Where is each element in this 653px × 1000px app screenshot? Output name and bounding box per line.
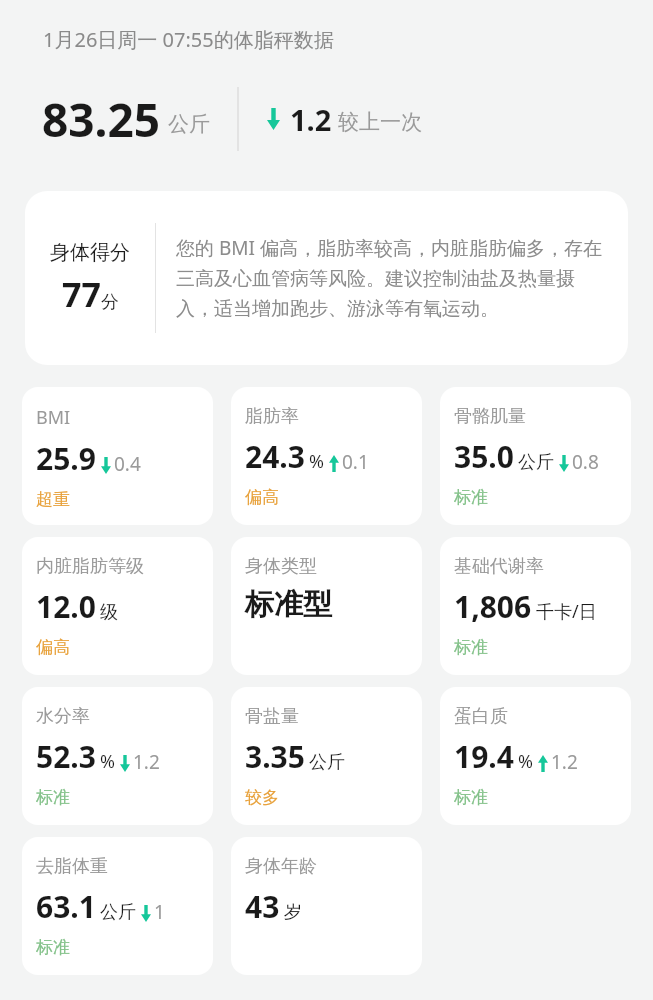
staticText: 公斤 [518, 451, 554, 474]
staticText: 偏高 [36, 637, 70, 658]
staticText: 3.35 [245, 736, 305, 777]
staticText: 77 [62, 271, 101, 317]
staticText: 63.1 [36, 886, 96, 927]
button[interactable]: 身体类型 [231, 537, 422, 675]
staticText: 级 [100, 601, 118, 624]
staticText: 公斤 [168, 111, 210, 137]
staticText: 身体得分 [50, 240, 130, 265]
staticText: 您的 BMI 偏高，脂肪率较高，内脏脂肪偏多，存在三高及心血管病等风险。建议控制… [176, 235, 610, 321]
staticText: 1.2 [290, 100, 332, 139]
other: Decrease [120, 755, 130, 772]
staticText: 1 [154, 899, 165, 925]
staticText: 1月26日周一 07:55的体脂秤数据 [43, 26, 334, 53]
staticText: 25.9 [36, 438, 96, 479]
button[interactable]: 身体年龄 [231, 837, 422, 975]
staticText: 身体年龄 [245, 855, 317, 878]
staticText: 去脂体重 [36, 855, 108, 878]
staticText: 0.8 [572, 449, 599, 475]
other: Decrease [559, 455, 569, 472]
button[interactable]: 内脏脂肪等级 [22, 537, 213, 675]
staticText: 标准 [454, 487, 488, 508]
button[interactable]: 去脂体重 [22, 837, 213, 975]
staticText: 12.0 [36, 586, 96, 627]
staticText: 标准 [454, 637, 488, 658]
staticText: % [309, 449, 324, 474]
button[interactable]: 基础代谢率 [440, 537, 631, 675]
staticText: 1.2 [551, 749, 578, 775]
staticText: 52.3 [36, 736, 96, 777]
button[interactable]: BMI [22, 387, 213, 525]
staticText: 43 [245, 886, 280, 927]
staticText: 0.1 [342, 449, 369, 475]
button[interactable]: 蛋白质 [440, 687, 631, 825]
staticText: % [518, 749, 533, 774]
staticText: 偏高 [245, 487, 279, 508]
staticText: 内脏脂肪等级 [36, 555, 144, 578]
staticText: 基础代谢率 [454, 555, 544, 578]
staticText: 水分率 [36, 705, 90, 728]
staticText: 0.4 [114, 451, 141, 477]
staticText: 19.4 [454, 736, 514, 777]
button[interactable]: 骨骼肌量 [440, 387, 631, 525]
other: Increase [329, 455, 339, 472]
staticText: 脂肪率 [245, 405, 299, 428]
staticText: 公斤 [100, 901, 136, 924]
staticText: 分 [101, 291, 119, 314]
staticText: 35.0 [454, 436, 514, 477]
staticText: 标准 [36, 937, 70, 958]
other: Decrease [141, 905, 151, 922]
other: Increase [538, 755, 548, 772]
button[interactable]: 身体得分 [25, 191, 628, 365]
staticText: 身体类型 [245, 555, 317, 578]
staticText: 较上一次 [338, 109, 422, 135]
other: Decrease [267, 108, 280, 130]
staticText: 标准 [454, 787, 488, 808]
button[interactable]: 水分率 [22, 687, 213, 825]
staticText: 超重 [36, 489, 70, 510]
staticText: 24.3 [245, 436, 305, 477]
other: Decrease [101, 457, 111, 474]
staticText: 1.2 [133, 749, 160, 775]
button[interactable]: 脂肪率 [231, 387, 422, 525]
staticText: BMI [36, 405, 71, 430]
staticText: 公斤 [309, 751, 345, 774]
staticText: 骨盐量 [245, 705, 299, 728]
staticText: 千卡/日 [536, 599, 597, 624]
staticText: 标准 [36, 787, 70, 808]
staticText: 岁 [284, 901, 302, 924]
staticText: 1,806 [454, 586, 532, 627]
button[interactable]: 骨盐量 [231, 687, 422, 825]
staticText: 骨骼肌量 [454, 405, 526, 428]
staticText: 83.25 [42, 88, 161, 151]
staticText: 较多 [245, 787, 279, 808]
staticText: 标准型 [245, 586, 332, 623]
staticText: % [100, 749, 115, 774]
staticText: 蛋白质 [454, 705, 508, 728]
